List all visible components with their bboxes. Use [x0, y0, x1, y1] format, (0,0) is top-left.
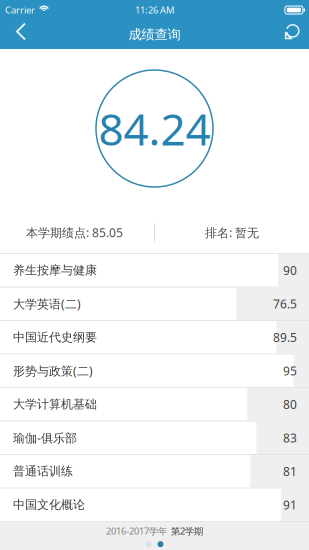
staticText: 普通话训练 [13, 464, 73, 479]
staticText: 83 [283, 430, 297, 446]
staticText: 大学计算机基础 [13, 397, 97, 412]
button[interactable]: 普通话训练 [0, 455, 309, 488]
button[interactable]: 中国近代史纲要 [0, 321, 309, 354]
staticText: 91 [283, 497, 297, 513]
button[interactable]: 返回 [0, 20, 60, 49]
staticText: 成绩查询 [128, 26, 180, 43]
staticText: 80 [283, 396, 297, 412]
staticText: 89.5 [273, 329, 297, 345]
staticText: 81 [283, 463, 297, 479]
button[interactable]: 大学英语(二) [0, 287, 309, 321]
staticText: 瑜伽-俱乐部 [13, 430, 77, 446]
button[interactable]: 大学计算机基础 [0, 388, 309, 421]
staticText: 养生按摩与健康 [13, 263, 97, 278]
staticText: 90 [283, 262, 297, 278]
button[interactable]: 形势与政策(二) [0, 354, 309, 388]
staticText: Carrier [5, 4, 35, 16]
staticText: 中国文化概论 [13, 497, 85, 512]
staticText: 形势与政策(二) [13, 363, 93, 379]
button[interactable]: 瑜伽-俱乐部 [0, 421, 309, 455]
staticText: 中国近代史纲要 [13, 330, 97, 345]
staticText: 84.24 [98, 99, 210, 158]
staticText: 2016-2017学年 [106, 525, 167, 537]
button[interactable]: 中国文化概论 [0, 488, 309, 522]
staticText: 大学英语(二) [13, 296, 81, 312]
button[interactable]: 刷新 [260, 20, 309, 49]
button[interactable]: 养生按摩与健康 [0, 254, 309, 287]
staticText: 第2学期 [171, 525, 203, 537]
staticText: 95 [283, 363, 297, 379]
staticText: 76.5 [273, 296, 297, 312]
staticText: 本学期绩点: 85.05 [26, 224, 123, 240]
staticText: 排名: 暂无 [205, 224, 259, 240]
staticText: 11:26 AM [135, 4, 174, 16]
